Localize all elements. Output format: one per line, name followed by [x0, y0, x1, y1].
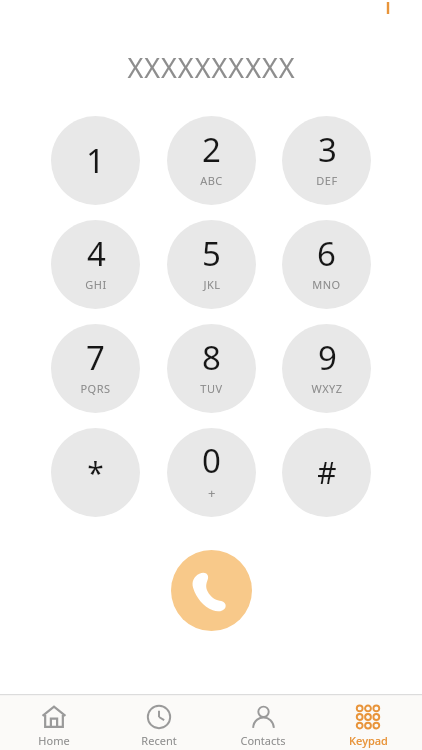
button[interactable]: Contacts — [213, 694, 313, 750]
staticText: DEF — [316, 173, 338, 188]
staticText: XXXXXXXXXX — [127, 49, 296, 86]
staticText: 9 — [318, 335, 337, 380]
staticText: Keypad — [349, 733, 388, 748]
staticText: # — [317, 452, 337, 493]
staticText: TUV — [200, 381, 223, 396]
button[interactable]: 0 — [167, 428, 256, 517]
staticText: Contacts — [240, 733, 286, 748]
staticText: Home — [38, 733, 70, 748]
staticText: 0 — [202, 438, 221, 483]
staticText: + — [208, 484, 216, 502]
staticText: 3 — [318, 127, 337, 172]
staticText: 7 — [86, 335, 105, 380]
button[interactable]: 2 — [167, 116, 256, 205]
button[interactable]: 6 — [282, 220, 371, 309]
button[interactable]: Recent — [109, 694, 209, 750]
button[interactable]: 5 — [167, 220, 256, 309]
button[interactable]: Keypad — [318, 694, 418, 750]
button[interactable]: 4 — [51, 220, 140, 309]
button[interactable]: 7 — [51, 324, 140, 413]
button[interactable]: 8 — [167, 324, 256, 413]
staticText: 4 — [87, 231, 106, 276]
button[interactable]: 1 — [51, 116, 140, 205]
staticText: WXYZ — [311, 381, 343, 396]
staticText: GHI — [85, 277, 107, 292]
button[interactable]: 9 — [282, 324, 371, 413]
staticText: JKL — [203, 277, 221, 292]
button[interactable]: Call — [171, 550, 252, 631]
staticText: Recent — [141, 733, 177, 748]
staticText: 8 — [202, 335, 221, 380]
staticText: * — [87, 452, 104, 493]
staticText: 6 — [317, 231, 336, 276]
button[interactable]: # — [282, 428, 371, 517]
button[interactable]: Home — [4, 694, 104, 750]
staticText: 1 — [86, 138, 105, 183]
staticText: MNO — [312, 277, 341, 292]
staticText: ABC — [200, 173, 223, 188]
button[interactable]: 3 — [282, 116, 371, 205]
staticText: 5 — [202, 231, 221, 276]
button[interactable]: * — [51, 428, 140, 517]
staticText: 2 — [202, 127, 221, 172]
staticText: PQRS — [80, 381, 111, 396]
